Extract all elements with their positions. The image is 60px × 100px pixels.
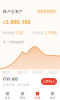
staticText: 可用余额 · 实时到账 bbox=[2, 83, 29, 86]
button[interactable]: 理财 bbox=[15, 89, 30, 100]
staticText: 08-31 bbox=[49, 71, 58, 74]
staticText: 七日年化 bbox=[32, 31, 44, 35]
staticText: 立即转入 bbox=[43, 79, 55, 83]
staticText: 账户总资产 bbox=[3, 9, 23, 14]
staticText: 首页 bbox=[4, 96, 10, 100]
staticText: 3,890,100 bbox=[5, 18, 30, 26]
staticText: 近一月收益走势 bbox=[3, 40, 24, 44]
staticText: 08-10 bbox=[18, 71, 27, 74]
staticText: 08-20 bbox=[33, 71, 42, 74]
staticText: ¥ bbox=[3, 20, 5, 25]
staticText: 理财 bbox=[19, 96, 25, 100]
staticText: 08-01 bbox=[2, 71, 11, 74]
button[interactable]: 查看收益明细 bbox=[36, 9, 57, 14]
staticText: 2.50 bbox=[16, 31, 23, 35]
button[interactable]: 首页 bbox=[0, 89, 15, 100]
staticText: 昨日收益 bbox=[3, 31, 15, 35]
staticText: ¥741,400 bbox=[2, 76, 17, 82]
button[interactable]: 交易 bbox=[30, 89, 45, 100]
button[interactable]: 立即转入 bbox=[41, 78, 57, 85]
staticText: 我的 bbox=[49, 96, 55, 100]
staticText: 交易 bbox=[34, 96, 40, 100]
button[interactable]: 我的 bbox=[45, 89, 60, 100]
staticText: 查看收益明细 bbox=[38, 10, 56, 13]
staticText: 2.910% bbox=[45, 31, 57, 35]
